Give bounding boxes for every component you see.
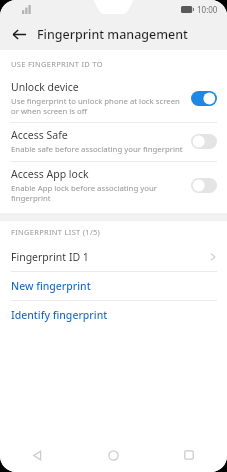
button[interactable]: Identify fingerprint <box>0 301 227 329</box>
button[interactable]: Off <box>191 134 217 149</box>
button[interactable]: Back <box>0 438 75 472</box>
staticText: Fingerprint management <box>37 26 188 43</box>
button[interactable]: Fingerprint ID 1 <box>0 243 227 271</box>
button[interactable]: Home <box>75 438 151 472</box>
staticText: USE FINGERPRINT ID TO <box>11 59 103 69</box>
button[interactable]: Off <box>191 178 217 193</box>
staticText: Enable safe before associating your fing… <box>11 144 183 155</box>
staticText: FINGERPRINT LIST (1/5) <box>11 227 101 237</box>
button[interactable]: Access App lock <box>0 162 227 209</box>
button[interactable]: On <box>191 91 217 106</box>
button[interactable]: Unlock device <box>0 75 227 122</box>
staticText: Unlock device <box>11 80 79 94</box>
button[interactable]: Recent apps <box>151 438 227 472</box>
staticText: Enable App lock before associating your … <box>11 183 157 203</box>
staticText: Fingerprint ID 1 <box>11 250 89 264</box>
staticText: Access App lock <box>11 167 89 181</box>
button[interactable]: New fingerprint <box>0 272 227 300</box>
staticText: Use fingerprint to unlock phone at lock … <box>11 96 180 116</box>
staticText: Identify fingerprint <box>11 308 108 322</box>
staticText: 10:00 <box>197 4 218 15</box>
staticText: New fingerprint <box>11 279 91 293</box>
button[interactable]: Access Safe <box>0 123 227 161</box>
staticText: Access Safe <box>11 128 68 142</box>
button[interactable]: Back <box>6 21 32 47</box>
